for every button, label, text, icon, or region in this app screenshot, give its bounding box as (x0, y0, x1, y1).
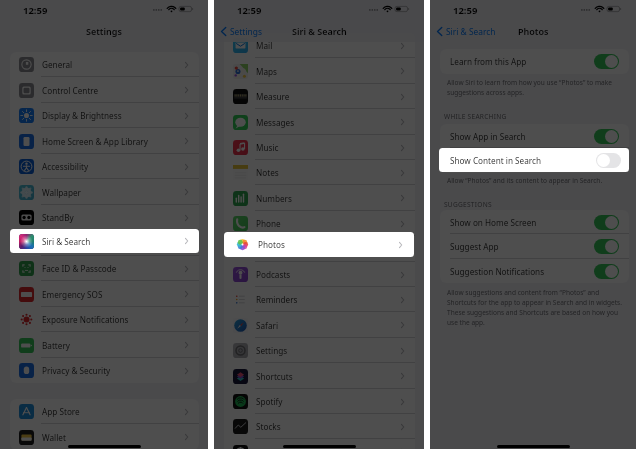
button[interactable]: Home Screen & App Library (10, 128, 199, 154)
staticText: Mail (256, 40, 273, 51)
staticText: Face ID & Passcode (42, 263, 117, 274)
button[interactable]: Toggle (594, 129, 619, 144)
button[interactable]: Mail (224, 33, 415, 58)
staticText: Photos (518, 25, 549, 37)
button[interactable]: Settings (214, 21, 268, 42)
button[interactable]: Battery (10, 332, 199, 358)
button[interactable]: Toggle (596, 153, 621, 168)
staticText: Control Centre (42, 85, 99, 96)
button[interactable]: Show Content in Search (439, 148, 629, 172)
button[interactable]: Measure (224, 84, 415, 109)
button[interactable]: Threads (224, 439, 415, 449)
button[interactable]: Siri & Search (10, 229, 199, 253)
button[interactable]: Messages (224, 109, 415, 135)
staticText: Messages (256, 117, 295, 128)
staticText: Reminders (256, 294, 298, 305)
button[interactable]: Photos (224, 236, 415, 262)
button[interactable]: Toggle (594, 239, 619, 254)
button[interactable]: Wallpaper (10, 179, 199, 205)
staticText: Allow Siri to learn from how you use “Ph… (447, 78, 612, 97)
staticText: Siri & Search (42, 236, 91, 247)
staticText: App Store (42, 406, 80, 417)
staticText: Battery (42, 340, 71, 351)
staticText: General (42, 59, 73, 70)
staticText: Display & Brightness (42, 110, 122, 121)
staticText: 12:59 (23, 4, 48, 17)
button[interactable]: Learn from this App (440, 49, 629, 74)
staticText: Allow suggestions and content from “Phot… (447, 288, 623, 327)
button[interactable]: Exposure Notifications (10, 307, 199, 332)
button[interactable]: Shortcuts (224, 363, 415, 389)
staticText: 12:59 (453, 4, 478, 17)
staticText: StandBy (42, 212, 74, 223)
staticText: Phone (256, 218, 281, 229)
button[interactable]: Wallet (10, 424, 199, 449)
staticText: Spotify (256, 396, 283, 407)
button[interactable]: Emergency SOS (10, 281, 199, 307)
staticText: Notes (256, 167, 279, 178)
button[interactable]: Toggle (594, 54, 619, 69)
staticText: Measure (256, 91, 290, 102)
button[interactable]: Control Centre (10, 77, 199, 103)
button[interactable]: Show Content in Search (440, 148, 629, 173)
staticText: Photos (256, 244, 283, 255)
button[interactable]: Privacy & Security (10, 358, 199, 383)
button[interactable]: Show App in Search (440, 124, 629, 148)
staticText: Settings (86, 25, 122, 37)
button[interactable]: Photos (224, 232, 414, 257)
staticText: Allow “Photos” and its content to appear… (447, 176, 603, 185)
button[interactable]: Music (224, 135, 415, 160)
button[interactable]: Maps (224, 58, 415, 84)
button[interactable]: Toggle (594, 153, 619, 168)
button[interactable]: Safari (224, 312, 415, 338)
button[interactable]: Reminders (224, 287, 415, 312)
staticText: Siri & Search (446, 26, 496, 37)
staticText: Suggestion Notifications (450, 266, 545, 277)
staticText: Photos (258, 239, 285, 250)
staticText: 12:59 (237, 4, 262, 17)
button[interactable]: Podcasts (224, 262, 415, 287)
staticText: Show App in Search (450, 131, 526, 142)
button[interactable]: Phone (224, 211, 415, 236)
button[interactable]: Suggest App (440, 234, 629, 259)
button[interactable]: Show on Home Screen (440, 210, 629, 234)
button[interactable]: Face ID & Passcode (10, 256, 199, 281)
button[interactable]: Numbers (224, 185, 415, 211)
button[interactable]: Stocks (224, 414, 415, 439)
staticText: SUGGESTIONS (444, 200, 492, 209)
button[interactable]: Accessibility (10, 154, 199, 179)
staticText: Wallpaper (42, 187, 81, 198)
staticText: Music (256, 142, 279, 153)
staticText: WHILE SEARCHING (444, 112, 507, 121)
button[interactable]: App Store (10, 399, 199, 424)
button[interactable]: Suggestion Notifications (440, 259, 629, 283)
staticText: Exposure Notifications (42, 314, 129, 325)
staticText: Siri & Search (292, 25, 347, 37)
staticText: Safari (256, 320, 278, 331)
staticText: Show on Home Screen (450, 217, 537, 228)
staticText: Stocks (256, 421, 281, 432)
staticText: Settings (256, 345, 288, 356)
button[interactable]: Display & Brightness (10, 103, 199, 128)
staticText: Settings (230, 26, 262, 37)
staticText: Learn from this App (450, 56, 527, 67)
staticText: Emergency SOS (42, 289, 103, 300)
staticText: Siri & Search (42, 238, 91, 249)
staticText: Home Screen & App Library (42, 136, 148, 147)
staticText: Accessibility (42, 161, 89, 172)
staticText: Show Content in Search (450, 155, 542, 166)
button[interactable]: Spotify (224, 389, 415, 414)
button[interactable]: StandBy (10, 205, 199, 230)
button[interactable]: Toggle (594, 215, 619, 230)
button[interactable]: Notes (224, 160, 415, 185)
button[interactable]: General (10, 52, 199, 77)
staticText: Numbers (256, 193, 292, 204)
button[interactable]: Siri & Search (430, 21, 502, 42)
button[interactable]: Siri & Search (10, 230, 199, 256)
staticText: Privacy & Security (42, 365, 111, 376)
staticText: Maps (256, 66, 277, 77)
staticText: Wallet (42, 432, 66, 443)
button[interactable]: Settings (224, 338, 415, 363)
button[interactable]: Toggle (594, 264, 619, 279)
staticText: Threads (256, 447, 287, 449)
